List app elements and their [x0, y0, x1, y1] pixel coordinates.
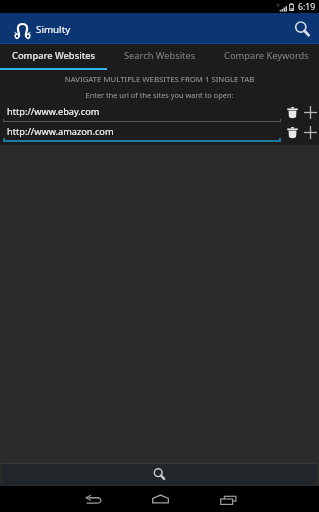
button[interactable]: Search	[283, 13, 319, 44]
button[interactable]: Search	[2, 463, 317, 485]
staticText: Compare Websites	[12, 49, 96, 62]
staticText: http://www.amazon.com	[7, 125, 114, 138]
button[interactable]: Add	[300, 105, 319, 124]
button[interactable]: Home	[136, 486, 184, 512]
button[interactable]: Recent apps	[204, 486, 252, 512]
button[interactable]: Add	[300, 125, 319, 144]
staticText: NAVIGATE MULTIPLE WEBSITES FROM 1 SINGLE…	[0, 74, 319, 85]
staticText: Search Websites	[124, 49, 196, 62]
button[interactable]: Delete	[281, 125, 300, 144]
button[interactable]: Compare Websites	[0, 44, 107, 70]
staticText: http://www.ebay.com	[7, 105, 100, 118]
staticText: Enter the url of the sites you want to o…	[0, 90, 319, 100]
button[interactable]: Back	[68, 486, 116, 512]
staticText: Simulty	[36, 23, 71, 36]
button[interactable]: Delete	[281, 105, 300, 124]
button[interactable]: Compare Keywords	[213, 44, 319, 70]
staticText: 6:19	[298, 1, 316, 13]
staticText: Compare Keywords	[224, 49, 309, 62]
button[interactable]: Search Websites	[107, 44, 213, 70]
